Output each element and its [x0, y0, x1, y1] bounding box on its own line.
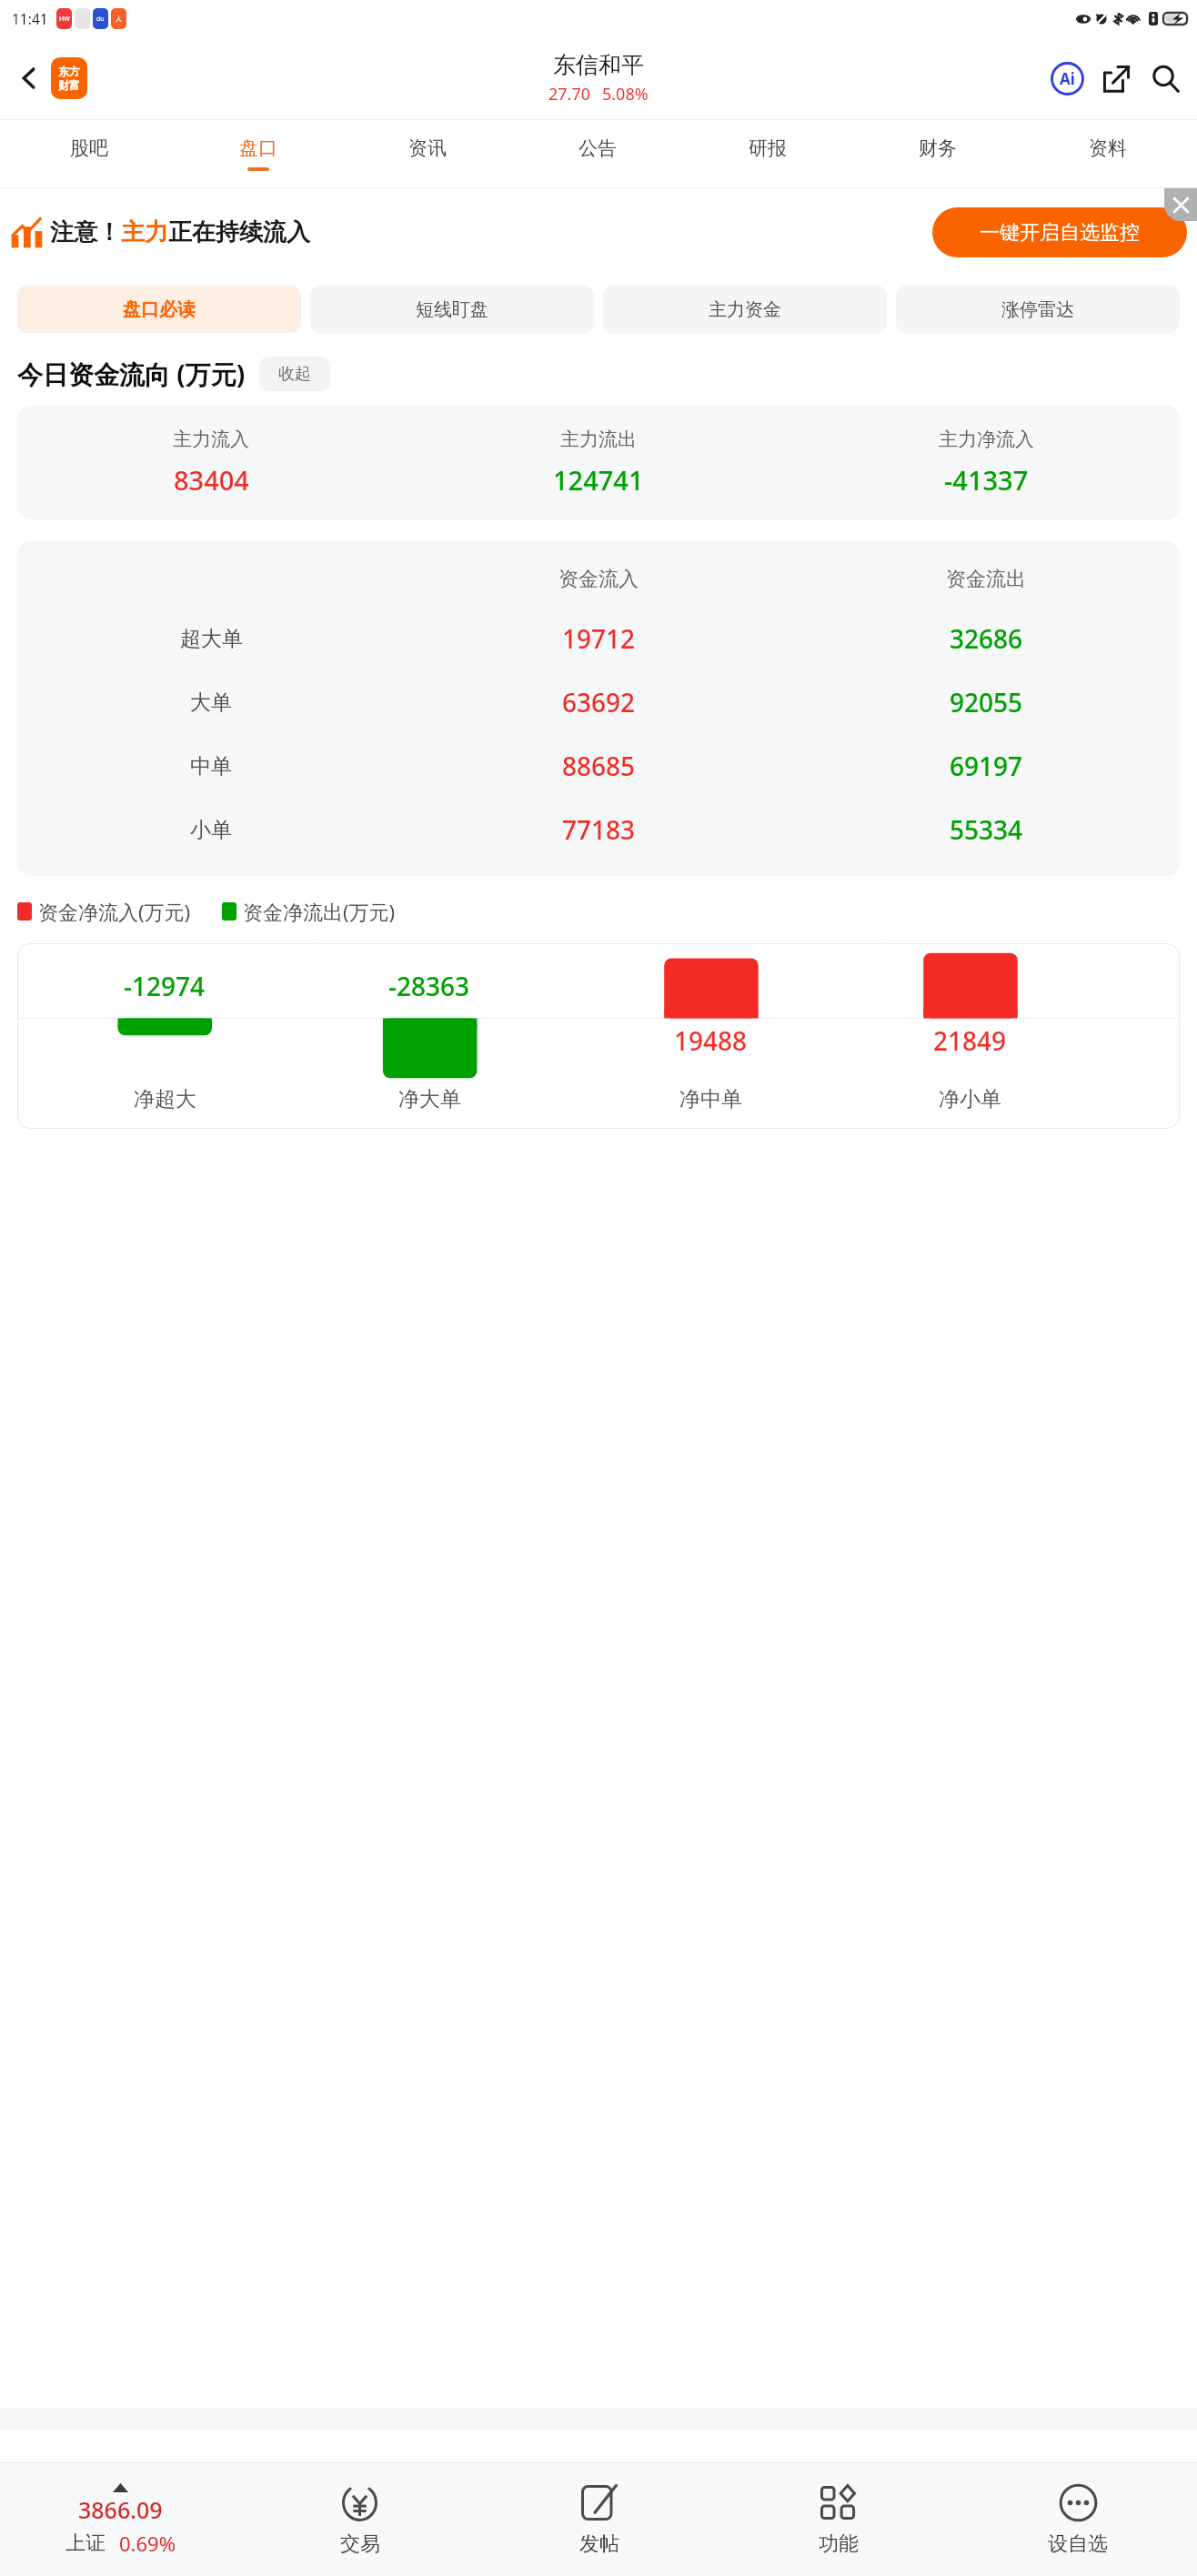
- staticText: 63692: [562, 685, 636, 719]
- button[interactable]: 功能: [719, 2463, 958, 2576]
- staticText: 0.69%: [119, 2530, 176, 2557]
- button[interactable]: 盘口: [174, 120, 343, 187]
- button[interactable]: 财务: [852, 120, 1022, 187]
- staticText: 财富: [58, 78, 80, 92]
- staticText: 27.70: [548, 83, 591, 106]
- staticText: 上证: [65, 2531, 106, 2556]
- button[interactable]: 短线盯盘: [310, 286, 594, 333]
- staticText: 东信和平: [553, 51, 644, 79]
- staticText: 21849: [933, 1023, 1007, 1058]
- staticText: 交易: [340, 2531, 380, 2557]
- staticText: 主力流入: [173, 428, 249, 451]
- staticText: 东方: [58, 65, 80, 78]
- staticText: 3866.09: [78, 2494, 163, 2525]
- staticText: -28363: [388, 969, 470, 1003]
- staticText: 盘口必读: [123, 298, 196, 321]
- button[interactable]: Search: [1144, 57, 1186, 99]
- button[interactable]: Back: [7, 56, 51, 100]
- staticText: 人: [116, 15, 122, 23]
- staticText: 发帖: [579, 2531, 619, 2557]
- staticText: 功能: [819, 2531, 859, 2557]
- button[interactable]: 3866.09: [0, 2463, 240, 2576]
- staticText: 财务: [919, 136, 957, 160]
- staticText: 净中单: [679, 1086, 742, 1112]
- staticText: 124741: [553, 462, 644, 498]
- staticText: 主力: [121, 217, 168, 247]
- staticText: 股吧: [70, 136, 108, 160]
- staticText: 设自选: [1048, 2531, 1108, 2557]
- staticText: 83404: [174, 462, 249, 498]
- staticText: 净小单: [939, 1086, 1001, 1112]
- button[interactable]: 设自选: [958, 2463, 1197, 2576]
- staticText: 资料: [1089, 136, 1127, 160]
- button[interactable]: AI assistant: [1046, 57, 1088, 99]
- button[interactable]: 公告: [512, 120, 682, 187]
- staticText: 资金流入: [558, 567, 639, 592]
- staticText: 32686: [950, 621, 1023, 656]
- staticText: 公告: [578, 136, 617, 160]
- staticText: HW: [59, 15, 70, 24]
- staticText: 净大单: [398, 1086, 461, 1112]
- staticText: -41337: [944, 462, 1029, 498]
- button[interactable]: Close banner: [1164, 188, 1197, 221]
- staticText: 大单: [190, 689, 232, 716]
- staticText: 净超大: [134, 1086, 196, 1112]
- staticText: du: [96, 15, 105, 24]
- staticText: -12974: [124, 969, 206, 1003]
- staticText: 注意！: [50, 217, 121, 247]
- button[interactable]: 发帖: [479, 2463, 719, 2576]
- staticText: 收起: [278, 364, 311, 385]
- button[interactable]: 研报: [682, 120, 852, 187]
- button[interactable]: 资料: [1022, 120, 1192, 187]
- staticText: 资金流出: [946, 567, 1026, 592]
- staticText: 超大单: [180, 626, 243, 652]
- staticText: 88685: [562, 749, 636, 783]
- staticText: 资讯: [408, 136, 447, 160]
- staticText: 资金净流出(万元): [243, 898, 396, 925]
- button[interactable]: 涨停雷达: [896, 286, 1180, 333]
- staticText: 短线盯盘: [416, 298, 488, 321]
- button[interactable]: 一键开启自选监控: [932, 207, 1187, 257]
- button[interactable]: 收起: [259, 357, 330, 391]
- button[interactable]: -12974: [17, 943, 1180, 1129]
- staticText: 11:41: [12, 9, 48, 28]
- staticText: 92055: [950, 685, 1023, 719]
- button[interactable]: 交易: [240, 2463, 479, 2576]
- staticText: 小单: [190, 817, 232, 843]
- staticText: 55334: [950, 812, 1023, 847]
- staticText: 今日资金流向 (万元): [17, 357, 246, 391]
- button[interactable]: 资金流入: [17, 541, 1180, 876]
- staticText: 19712: [562, 621, 636, 656]
- button[interactable]: 主力资金: [603, 286, 887, 333]
- staticText: 中单: [190, 753, 232, 780]
- staticText: Ai: [1060, 68, 1075, 89]
- staticText: 主力资金: [709, 298, 781, 321]
- staticText: 77183: [562, 812, 636, 847]
- staticText: 正在持续流入: [168, 217, 310, 247]
- staticText: 研报: [749, 136, 787, 160]
- staticText: 盘口: [239, 136, 277, 160]
- staticText: 资金净流入(万元): [38, 898, 191, 925]
- staticText: 19488: [674, 1023, 748, 1058]
- button[interactable]: 主力流入: [17, 406, 1180, 519]
- staticText: 涨停雷达: [1001, 298, 1074, 321]
- button[interactable]: 资讯: [343, 120, 512, 187]
- button[interactable]: 股吧: [5, 120, 174, 187]
- staticText: 主力流出: [560, 428, 637, 451]
- button[interactable]: Share: [1095, 57, 1137, 99]
- staticText: 69197: [950, 749, 1023, 783]
- button[interactable]: East Money home: [51, 57, 87, 99]
- button[interactable]: 盘口必读: [17, 286, 301, 333]
- staticText: 主力净流入: [939, 428, 1034, 451]
- staticText: 一键开启自选监控: [980, 220, 1140, 246]
- staticText: 5.08%: [602, 83, 649, 106]
